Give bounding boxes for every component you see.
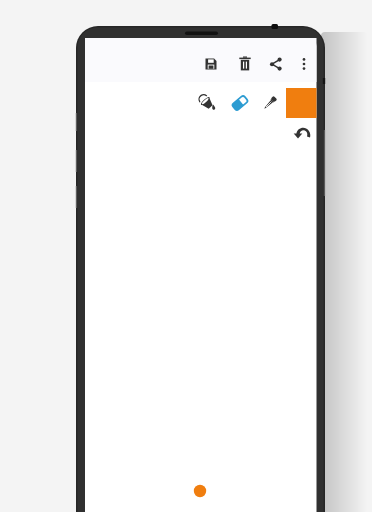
button[interactable]: Color picker	[256, 88, 285, 118]
button[interactable]: Eraser tool	[225, 88, 255, 118]
button[interactable]: More options	[294, 53, 315, 76]
button[interactable]: Fill tool	[193, 88, 222, 118]
button[interactable]: Share	[265, 53, 288, 76]
button[interactable]: Undo	[290, 121, 316, 146]
button[interactable]: Delete	[234, 53, 257, 76]
button[interactable]: Save	[200, 53, 223, 76]
button[interactable]: Current color	[286, 88, 317, 118]
